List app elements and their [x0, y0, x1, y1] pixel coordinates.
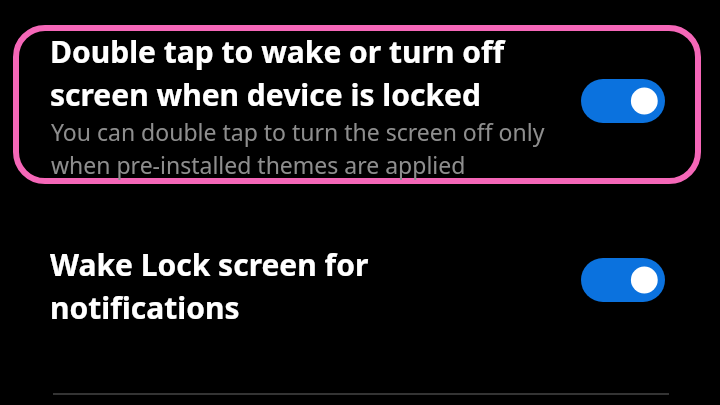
staticText: Wake Lock screen for notifications: [50, 244, 369, 328]
staticText: You can double tap to turn the screen of…: [51, 116, 545, 181]
button[interactable]: [13, 25, 701, 184]
button[interactable]: Double tap to wake or turn off screen to…: [581, 79, 665, 123]
staticText: Double tap to wake or turn off screen wh…: [50, 31, 505, 115]
button[interactable]: Wake Lock screen for notifications toggl…: [581, 258, 665, 302]
